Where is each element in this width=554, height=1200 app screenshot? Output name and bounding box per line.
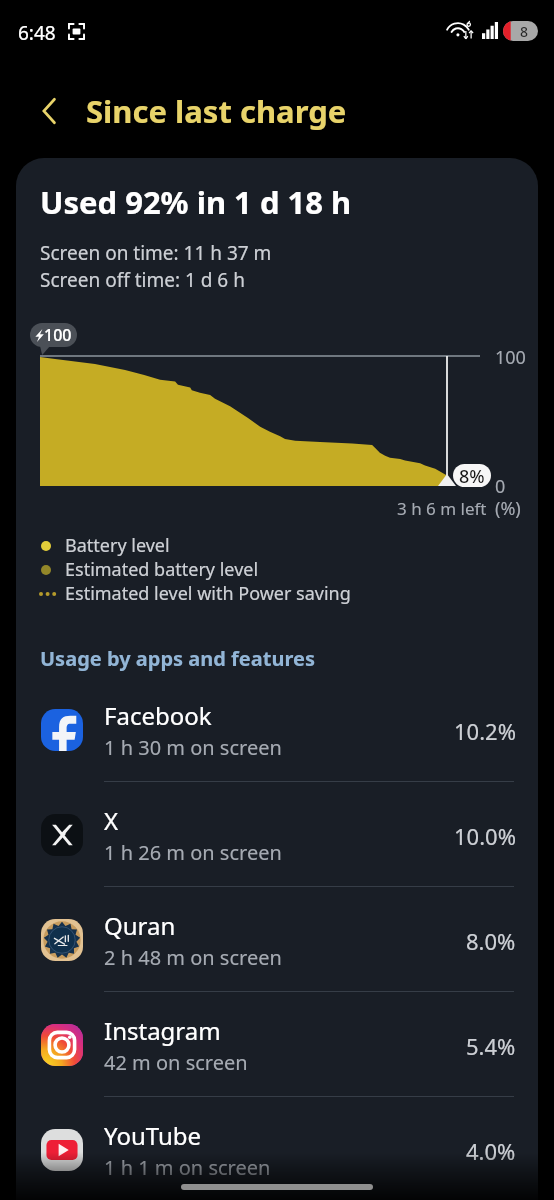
staticText: Instagram [104,1014,221,1047]
staticText: Used 92% in 1 d 18 h [40,181,352,223]
staticText: 42 m on screen [104,1049,248,1076]
staticText: 8% [459,464,485,487]
staticText: Screen on time: 11 h 37 m [40,240,272,266]
staticText: 8.0% [466,926,516,956]
staticText: 8 [520,22,529,41]
staticText: 10.0% [454,821,516,851]
staticText: Screen off time: 1 d 6 h [40,267,245,293]
staticText: Since last charge [86,90,347,132]
staticText: 3 h 6 m left [397,497,487,520]
button[interactable]: Back [29,90,71,132]
staticText: (%) [495,496,521,521]
staticText: Battery level [65,533,170,558]
staticText: 6:48 [18,20,56,46]
staticText: 4.0% [466,1136,516,1166]
button[interactable]: Instagram [16,993,538,1098]
staticText: Facebook [104,699,212,732]
button[interactable]: YouTube [16,1098,538,1200]
staticText: 1 h 1 m on screen [104,1154,271,1181]
button[interactable]: Screenshot [68,23,85,40]
staticText: Quran [104,909,176,942]
staticText: 100 [495,345,526,370]
staticText: 10.2% [454,716,516,746]
button[interactable]: Quran [16,888,538,993]
staticText: Estimated level with Power saving [65,581,351,606]
staticText: 0 [495,474,506,499]
staticText: Estimated battery level [65,557,259,582]
button[interactable]: X [16,783,538,888]
staticText: 2 h 48 m on screen [104,944,282,971]
staticText: 100 [44,324,72,346]
staticText: 5.4% [466,1031,516,1061]
staticText: Usage by apps and features [40,645,315,672]
staticText: 1 h 30 m on screen [104,734,282,761]
staticText: YouTube [104,1119,202,1152]
staticText: 1 h 26 m on screen [104,839,282,866]
staticText: X [104,804,119,837]
button[interactable]: Facebook [16,678,538,783]
